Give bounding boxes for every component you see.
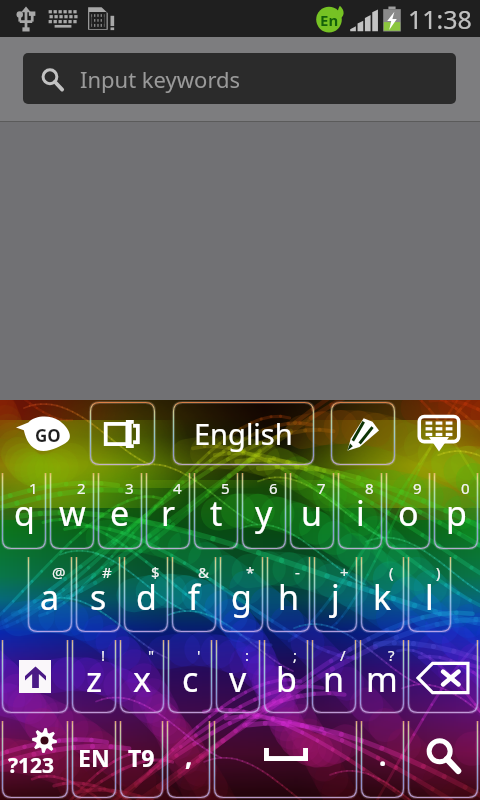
staticText: k: [373, 574, 392, 620]
button[interactable]: 2: [48, 467, 96, 551]
button[interactable]: &: [170, 551, 218, 634]
staticText: .: [379, 738, 387, 773]
button[interactable]: Backspace: [406, 634, 480, 715]
button[interactable]: ": [118, 634, 166, 715]
button[interactable]: ;: [262, 634, 310, 715]
button[interactable]: 9: [384, 467, 432, 551]
staticText: s: [90, 574, 107, 620]
staticText: En: [320, 10, 339, 30]
staticText: English: [194, 414, 293, 453]
staticText: c: [182, 656, 199, 702]
button[interactable]: English: [171, 400, 316, 467]
staticText: m: [366, 656, 398, 702]
button[interactable]: +: [312, 551, 359, 634]
button[interactable]: Input keywords: [23, 53, 456, 104]
staticText: #: [102, 562, 112, 582]
staticText: -: [295, 562, 300, 582]
staticText: x: [133, 656, 151, 702]
staticText: *: [246, 562, 255, 582]
button[interactable]: Shift: [0, 634, 70, 715]
staticText: r: [161, 490, 176, 536]
button[interactable]: :: [214, 634, 262, 715]
button[interactable]: /: [310, 634, 358, 715]
button[interactable]: Space: [212, 715, 359, 800]
button[interactable]: Search: [406, 715, 480, 800]
staticText: 7: [317, 478, 326, 498]
staticText: b: [276, 656, 297, 702]
staticText: q: [14, 490, 35, 536]
button[interactable]: 3: [96, 467, 144, 551]
staticText: ?123: [8, 751, 55, 780]
staticText: y: [255, 490, 273, 536]
staticText: v: [229, 656, 247, 702]
button[interactable]: Symbols and settings: [0, 715, 70, 800]
staticText: e: [110, 490, 130, 536]
staticText: d: [136, 574, 157, 620]
button[interactable]: Handwriting: [329, 400, 397, 467]
button[interactable]: 4: [144, 467, 192, 551]
staticText: ): [436, 562, 441, 582]
staticText: ;: [293, 645, 298, 665]
staticText: n: [323, 656, 345, 702]
staticText: 5: [221, 478, 230, 498]
staticText: l: [425, 574, 434, 620]
staticText: EN: [78, 742, 110, 773]
button[interactable]: .: [359, 715, 406, 800]
staticText: GO: [35, 424, 61, 447]
staticText: ?: [388, 645, 395, 665]
button[interactable]: Keyboard layout: [88, 400, 157, 467]
staticText: 11:38: [408, 2, 472, 36]
staticText: +: [340, 562, 349, 582]
staticText: !: [101, 645, 106, 665]
staticText: u: [301, 490, 323, 536]
staticText: h: [278, 574, 300, 620]
button[interactable]: EN: [70, 715, 118, 800]
staticText: ,: [185, 738, 193, 773]
button[interactable]: ?: [358, 634, 406, 715]
staticText: 4: [173, 478, 182, 498]
button[interactable]: 6: [240, 467, 288, 551]
button[interactable]: 0: [432, 467, 480, 551]
button[interactable]: $: [122, 551, 170, 634]
button[interactable]: ): [406, 551, 453, 634]
button[interactable]: T9: [118, 715, 165, 800]
staticText: ': [197, 645, 201, 665]
button[interactable]: !: [70, 634, 118, 715]
staticText: f: [188, 574, 200, 620]
button[interactable]: GO keyboard: [0, 400, 88, 467]
button[interactable]: 8: [336, 467, 384, 551]
staticText: g: [231, 574, 252, 620]
button[interactable]: #: [74, 551, 122, 634]
button[interactable]: 1: [0, 467, 48, 551]
staticText: Input keywords: [80, 64, 241, 94]
button[interactable]: 7: [288, 467, 336, 551]
staticText: 3: [125, 478, 134, 498]
button[interactable]: Hide keyboard: [397, 400, 480, 467]
staticText: &: [198, 562, 209, 582]
staticText: ": [148, 645, 155, 665]
staticText: 8: [365, 478, 374, 498]
staticText: $: [151, 562, 160, 582]
button[interactable]: (: [359, 551, 406, 634]
button[interactable]: 5: [192, 467, 240, 551]
button[interactable]: *: [218, 551, 265, 634]
staticText: o: [398, 490, 419, 536]
staticText: z: [86, 656, 102, 702]
staticText: @: [52, 562, 66, 582]
staticText: (: [389, 562, 394, 582]
staticText: 2: [77, 478, 86, 498]
staticText: :: [245, 645, 250, 665]
staticText: 6: [269, 478, 278, 498]
staticText: 9: [413, 478, 422, 498]
staticText: t: [210, 490, 223, 536]
staticText: w: [59, 490, 86, 536]
staticText: /: [340, 645, 346, 665]
staticText: a: [40, 574, 60, 620]
staticText: i: [356, 490, 365, 536]
button[interactable]: -: [265, 551, 312, 634]
staticText: 1: [29, 478, 38, 498]
button[interactable]: @: [26, 551, 74, 634]
button[interactable]: ': [166, 634, 214, 715]
button[interactable]: ,: [165, 715, 212, 800]
staticText: T9: [128, 742, 155, 773]
